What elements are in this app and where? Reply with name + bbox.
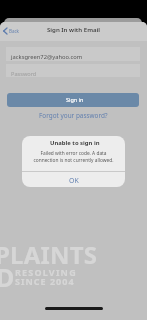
other: Home indicator (45, 307, 103, 310)
button[interactable]: Back (0, 24, 24, 38)
staticText: D (0, 260, 15, 294)
button[interactable]: Sign in (7, 93, 139, 107)
staticText: Back (9, 28, 20, 34)
staticText: Password (11, 70, 37, 78)
staticText: RESOLVING (15, 266, 77, 278)
staticText: SINCE 2004 (15, 275, 75, 287)
staticText: Failed with error code. A data connectio… (33, 150, 114, 164)
button[interactable]: OK (22, 171, 125, 187)
staticText: Unable to sign in (50, 139, 100, 147)
staticText: Sign In with Email (47, 25, 101, 33)
staticText: OK (69, 176, 79, 185)
button[interactable]: Password (6, 64, 140, 77)
button[interactable]: jacksgreen72@yahoo.com (6, 47, 140, 61)
staticText: Sign in (66, 96, 84, 103)
staticText: jacksgreen72@yahoo.com (11, 53, 83, 61)
button[interactable]: Forgot your password? (37, 109, 110, 122)
staticText: PLAINTS (0, 238, 98, 271)
